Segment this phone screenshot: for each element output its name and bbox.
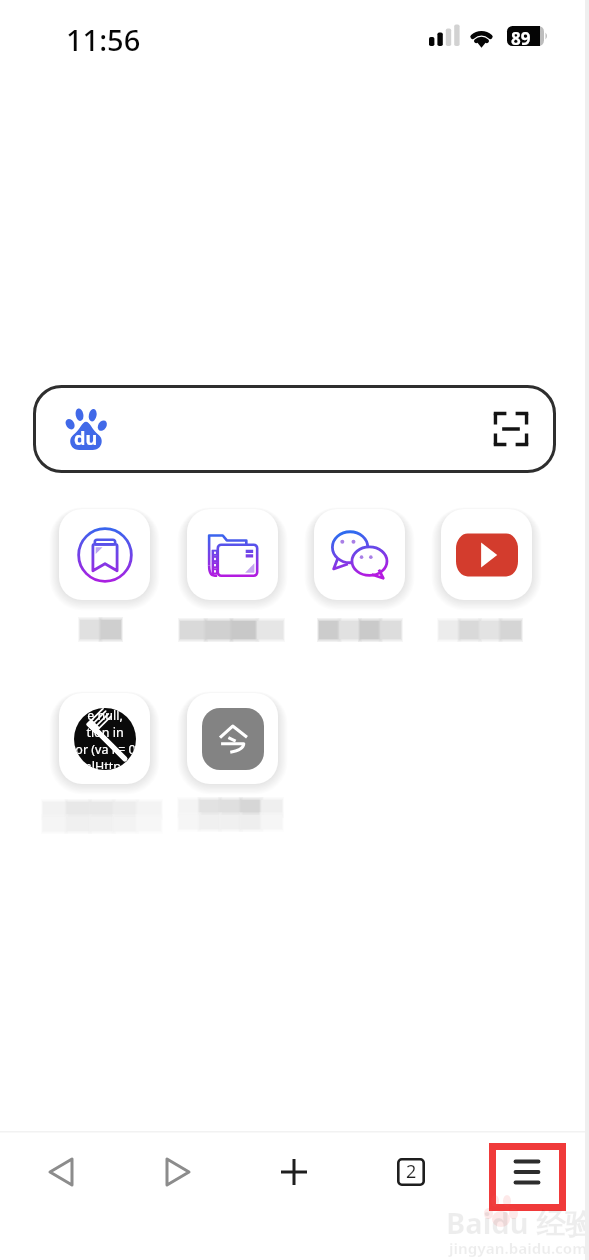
staticText: 11:56 xyxy=(66,20,141,59)
button[interactable]: WeChat xyxy=(314,509,405,600)
button[interactable]: App xyxy=(187,693,278,784)
staticText: du xyxy=(74,426,98,451)
button[interactable]: Back xyxy=(25,1136,97,1208)
button[interactable]: App xyxy=(59,693,150,784)
staticText: 2 xyxy=(406,1159,417,1184)
staticText: mlHttp.x xyxy=(80,758,131,769)
button[interactable]: Menu xyxy=(491,1136,563,1208)
staticText: tion in xyxy=(86,724,124,741)
button[interactable]: du xyxy=(33,385,556,473)
staticText: jingyan.baidu.com xyxy=(449,1238,587,1258)
button[interactable]: Bookmarks xyxy=(59,509,150,600)
button[interactable]: Files xyxy=(187,509,278,600)
staticText: 89 xyxy=(511,27,531,49)
staticText: or (va i = 0 xyxy=(75,741,136,758)
button[interactable]: Tabs, 2 open xyxy=(375,1136,447,1208)
button[interactable]: New tab xyxy=(258,1136,330,1208)
staticText: e null, xyxy=(87,708,123,724)
button[interactable]: Scan QR code xyxy=(489,407,533,451)
button[interactable]: YouTube xyxy=(441,509,532,600)
button[interactable]: Forward xyxy=(142,1136,214,1208)
staticText: Baidu 经验 xyxy=(446,1203,589,1243)
